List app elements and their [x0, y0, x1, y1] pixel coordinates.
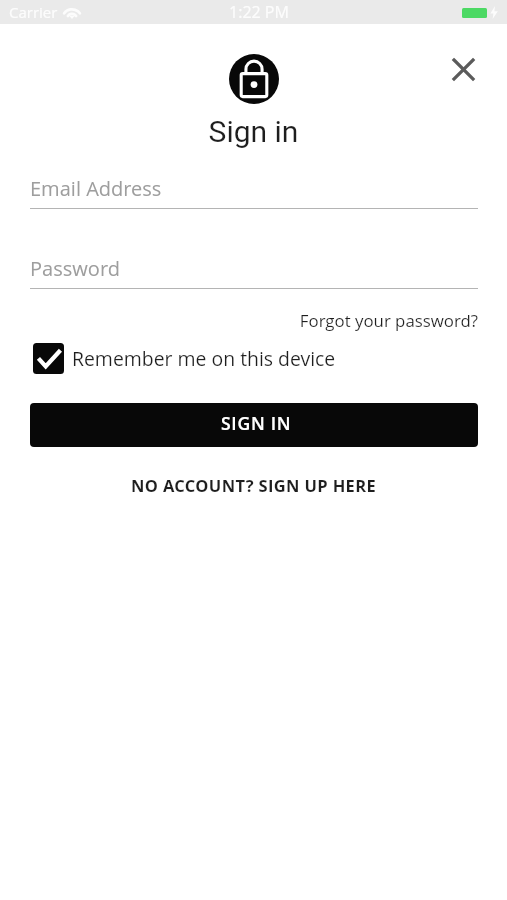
staticText: Forgot your password?: [299, 309, 478, 332]
button[interactable]: SIGN IN: [30, 403, 478, 447]
staticText: NO ACCOUNT? SIGN UP HERE: [131, 474, 377, 496]
staticText: Sign in: [0, 114, 507, 149]
staticText: 1:22 PM: [229, 1, 289, 23]
staticText: Remember me on this device: [72, 345, 336, 371]
staticText: Password: [30, 255, 120, 282]
button[interactable]: Remember me on this device: [30, 339, 360, 376]
button[interactable]: Forgot your password?: [30, 307, 478, 333]
button[interactable]: NO ACCOUNT? SIGN UP HERE: [30, 469, 478, 501]
staticText: Carrier: [9, 2, 58, 22]
button[interactable]: Close: [441, 47, 485, 91]
staticText: SIGN IN: [221, 411, 292, 435]
staticText: Email Address: [30, 175, 162, 202]
